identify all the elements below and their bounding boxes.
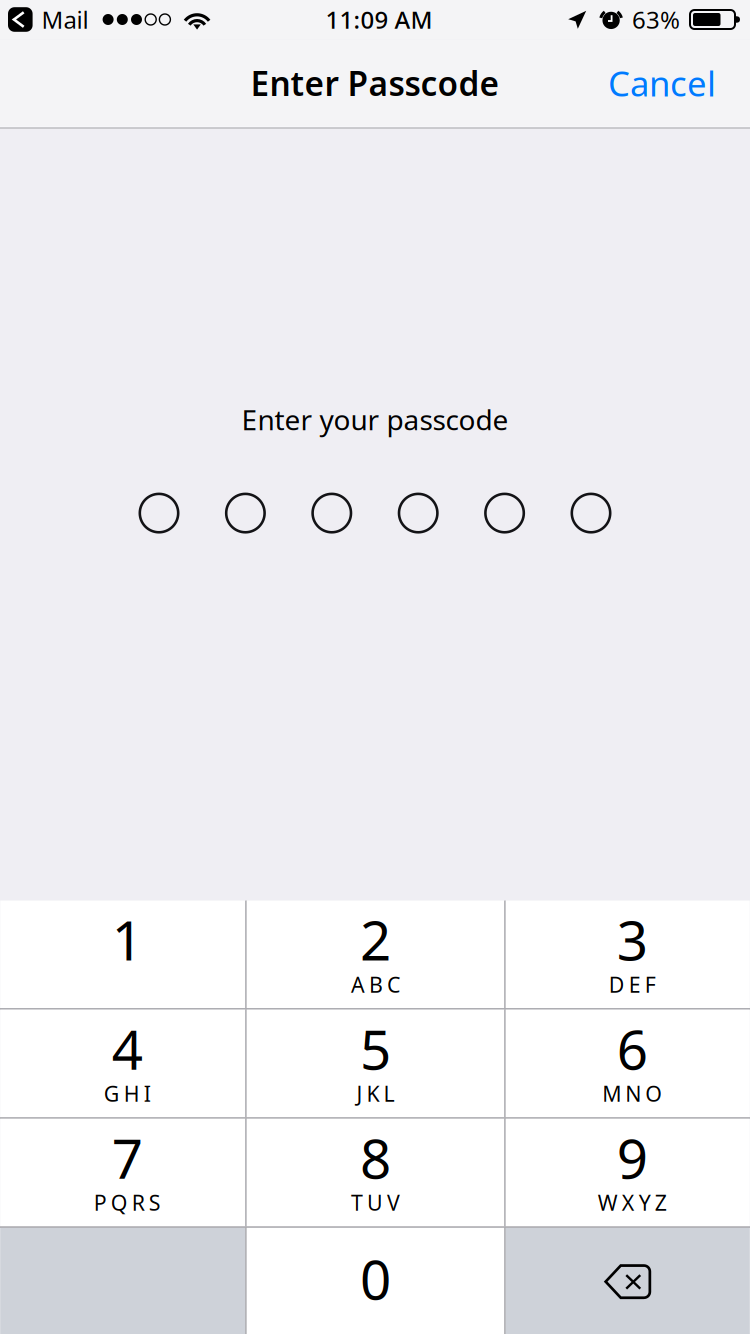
button[interactable]: 7 (0, 1119, 245, 1226)
staticText: 5 (360, 1012, 391, 1085)
staticText: M N O (602, 1079, 662, 1108)
staticText: 63% (632, 4, 680, 35)
button[interactable]: 2 (247, 900, 504, 1008)
staticText: 6 (617, 1012, 648, 1085)
button[interactable]: 6 (506, 1010, 750, 1117)
staticText: J K L (356, 1079, 394, 1108)
staticText: 4 (112, 1012, 143, 1085)
staticText: Mail (42, 4, 89, 35)
button[interactable]: 5 (247, 1010, 504, 1117)
button[interactable]: 1 (0, 900, 245, 1008)
button[interactable]: Delete (506, 1228, 750, 1334)
staticText: 11:09 AM (325, 4, 432, 35)
button[interactable]: 3 (506, 900, 750, 1008)
button[interactable]: Cancel (590, 39, 750, 126)
staticText: T U V (351, 1188, 400, 1217)
staticText: W X Y Z (598, 1188, 667, 1217)
staticText: A B C (351, 970, 400, 998)
staticText: G H I (104, 1079, 151, 1108)
staticText: 9 (617, 1121, 648, 1194)
staticText: Enter Passcode (250, 61, 499, 105)
staticText: 8 (360, 1121, 391, 1194)
staticText: 3 (617, 903, 648, 976)
staticText: 1 (112, 903, 143, 976)
staticText: 2 (360, 903, 391, 976)
staticText: D E F (609, 970, 656, 998)
staticText: 0 (360, 1242, 391, 1315)
button[interactable]: 4 (0, 1010, 245, 1117)
staticText: Enter your passcode (241, 401, 508, 438)
staticText: Cancel (608, 60, 716, 106)
staticText: P Q R S (94, 1188, 161, 1217)
button[interactable]: 0 (247, 1228, 504, 1334)
staticText: 7 (112, 1121, 143, 1194)
button[interactable]: 9 (506, 1119, 750, 1226)
button[interactable]: 8 (247, 1119, 504, 1226)
